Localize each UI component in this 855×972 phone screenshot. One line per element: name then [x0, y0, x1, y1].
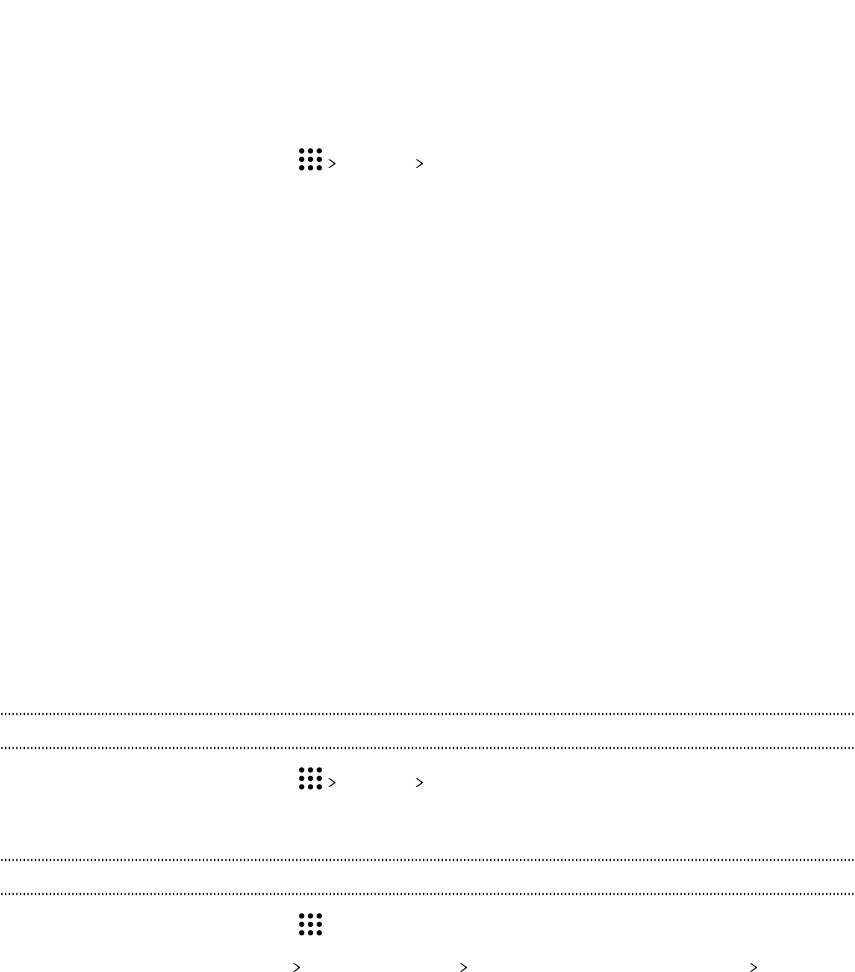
button[interactable]: Recently Added — [0, 131, 855, 187]
button[interactable]: Browse — [299, 902, 392, 946]
button[interactable]: Downloaded — [0, 750, 855, 806]
button[interactable]: Search — [678, 963, 828, 972]
button[interactable]: Radio — [388, 963, 538, 972]
button[interactable]: Library — [221, 963, 371, 972]
